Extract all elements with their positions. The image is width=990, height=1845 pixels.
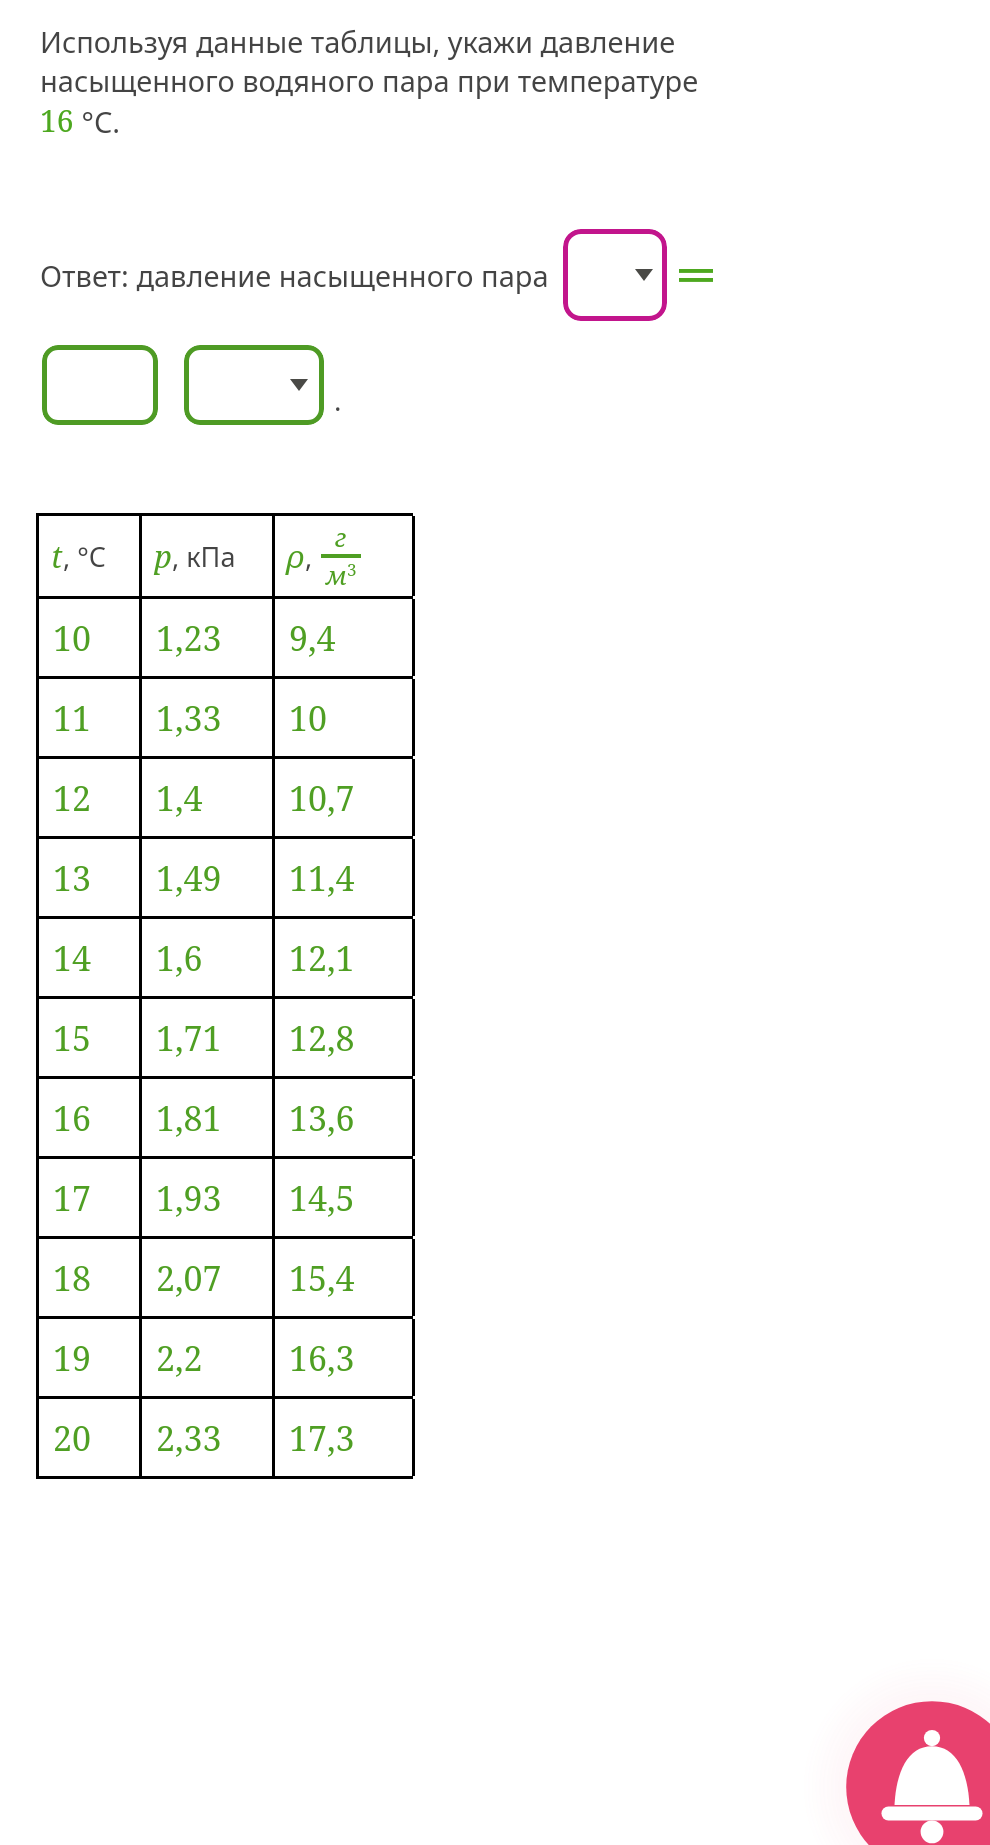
staticText: 16,3 <box>289 1335 355 1381</box>
staticText: 2,07 <box>156 1255 222 1301</box>
staticText: г <box>335 520 347 554</box>
staticText: 11 <box>53 695 92 741</box>
staticText: , °C <box>63 538 106 575</box>
staticText: 2,2 <box>156 1335 203 1381</box>
button[interactable] <box>184 345 324 425</box>
staticText: 2,33 <box>156 1415 222 1461</box>
staticText: 17 <box>53 1175 92 1221</box>
staticText: 10,7 <box>289 775 355 821</box>
staticText: 1,71 <box>156 1015 222 1061</box>
staticText: 12,8 <box>289 1015 355 1061</box>
staticText: 15,4 <box>289 1255 355 1301</box>
button[interactable] <box>563 229 667 321</box>
staticText: 14 <box>53 935 92 981</box>
staticText: 16 <box>40 100 74 141</box>
staticText: м <box>326 558 347 592</box>
staticText: °C. <box>74 102 121 141</box>
staticText: 18 <box>53 1255 92 1301</box>
staticText: , <box>305 538 313 575</box>
staticText: , кПа <box>172 538 236 575</box>
staticText: 1,33 <box>156 695 222 741</box>
staticText: 12,1 <box>289 935 355 981</box>
staticText: 1,23 <box>156 615 222 661</box>
staticText: 10 <box>53 615 92 661</box>
staticText: 13,6 <box>289 1095 355 1141</box>
staticText: 1,6 <box>156 935 203 981</box>
staticText: 13 <box>53 855 92 901</box>
button[interactable]: Уведомления <box>802 1657 990 1845</box>
staticText: насыщенного водяного пара при температур… <box>40 61 699 100</box>
staticText: t <box>51 535 63 577</box>
staticText: 16 <box>53 1095 92 1141</box>
staticText: 17,3 <box>289 1415 355 1461</box>
staticText: 1,81 <box>156 1095 222 1141</box>
staticText: . <box>334 381 342 419</box>
staticText: 10 <box>289 695 328 741</box>
button[interactable] <box>42 345 158 425</box>
staticText: 1,93 <box>156 1175 222 1221</box>
staticText: 12 <box>53 775 92 821</box>
staticText: 11,4 <box>289 855 355 901</box>
staticText: ρ <box>287 535 305 577</box>
staticText: 20 <box>53 1415 92 1461</box>
staticText: 19 <box>53 1335 92 1381</box>
staticText: 15 <box>53 1015 92 1061</box>
staticText: Используя данные таблицы, укажи давление <box>40 22 676 61</box>
staticText: 1,4 <box>156 775 203 821</box>
staticText: 3 <box>347 558 357 581</box>
staticText: 14,5 <box>289 1175 355 1221</box>
staticText: 1,49 <box>156 855 222 901</box>
staticText: p <box>154 535 172 577</box>
staticText: Ответ: давление насыщенного пара <box>40 256 549 295</box>
staticText: 9,4 <box>289 615 336 661</box>
